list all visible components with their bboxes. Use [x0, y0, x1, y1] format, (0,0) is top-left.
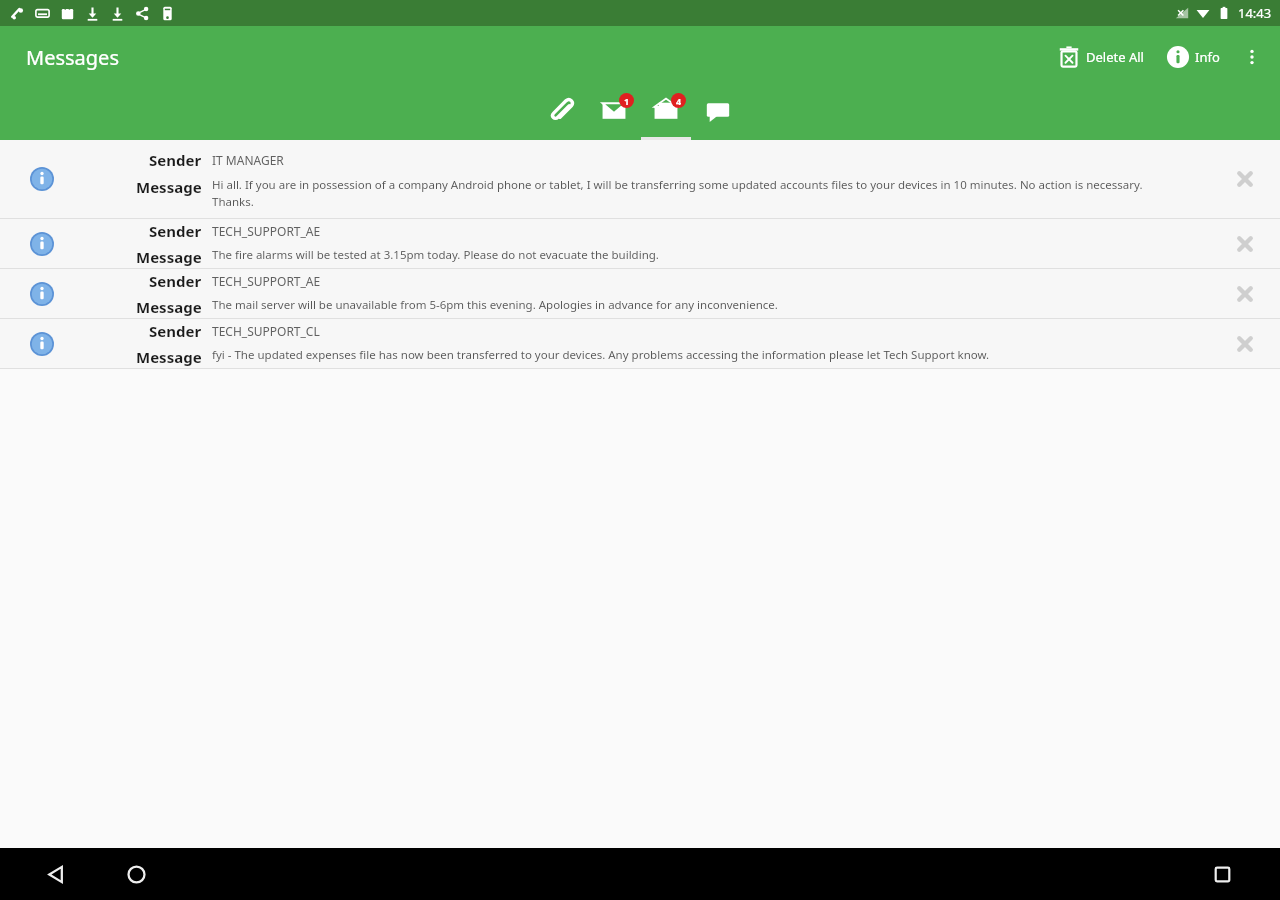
- button[interactable]: Read messages: [640, 88, 692, 140]
- staticText: TECH_SUPPORT_CL: [212, 323, 320, 339]
- button[interactable]: Info: [1160, 37, 1226, 77]
- button[interactable]: Delete All: [1052, 38, 1150, 76]
- button[interactable]: Home: [114, 852, 158, 896]
- staticText: Sender: [149, 150, 202, 170]
- staticText: fyi - The updated expenses file has now …: [212, 347, 990, 363]
- staticText: Message: [136, 297, 202, 317]
- staticText: 1: [624, 95, 630, 107]
- staticText: Sender: [149, 221, 202, 241]
- button[interactable]: Delete message: [1210, 140, 1280, 218]
- staticText: TECH_SUPPORT_AE: [212, 223, 321, 239]
- button[interactable]: Chat: [692, 88, 744, 140]
- staticText: Sender: [149, 321, 202, 341]
- staticText: Message: [136, 247, 202, 267]
- button[interactable]: Sender: [0, 269, 1280, 319]
- button[interactable]: Attachments: [536, 88, 588, 140]
- staticText: Sender: [149, 271, 202, 291]
- staticText: The fire alarms will be tested at 3.15pm…: [212, 247, 659, 263]
- button[interactable]: Inbox: [588, 88, 640, 140]
- staticText: Message: [136, 347, 202, 367]
- button[interactable]: Back: [34, 852, 78, 896]
- button[interactable]: Delete message: [1210, 219, 1280, 268]
- staticText: Hi all. If you are in possession of a co…: [212, 177, 1180, 209]
- staticText: 4: [676, 95, 682, 107]
- staticText: The mail server will be unavailable from…: [212, 297, 778, 313]
- button[interactable]: Sender: [0, 219, 1280, 269]
- button[interactable]: More options: [1232, 37, 1272, 77]
- button[interactable]: Sender: [0, 140, 1280, 219]
- staticText: TECH_SUPPORT_AE: [212, 273, 321, 289]
- button[interactable]: Delete message: [1210, 269, 1280, 318]
- staticText: Info: [1195, 48, 1220, 66]
- staticText: IT MANAGER: [212, 152, 284, 168]
- staticText: Delete All: [1086, 48, 1144, 66]
- staticText: Message: [136, 177, 202, 197]
- staticText: Messages: [26, 44, 119, 71]
- button[interactable]: Recents: [1200, 852, 1244, 896]
- button[interactable]: Delete message: [1210, 319, 1280, 368]
- staticText: 14:43: [1238, 4, 1272, 22]
- button[interactable]: Sender: [0, 319, 1280, 369]
